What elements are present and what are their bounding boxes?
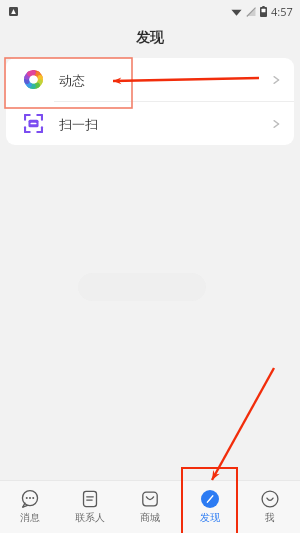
button[interactable]: 消息 bbox=[0, 481, 60, 533]
staticText: 发现 bbox=[200, 511, 220, 524]
staticText: 商城 bbox=[140, 511, 160, 524]
staticText: 动态 bbox=[59, 72, 85, 88]
staticText: 我 bbox=[265, 511, 275, 524]
staticText: 4:57 bbox=[271, 4, 293, 19]
button[interactable]: 动态 bbox=[6, 58, 294, 101]
staticText: 扫一扫 bbox=[59, 116, 98, 132]
staticText: 消息 bbox=[20, 511, 40, 524]
button[interactable]: 联系人 bbox=[60, 481, 120, 533]
button[interactable]: 发现 bbox=[180, 481, 240, 533]
staticText: 发现 bbox=[136, 29, 164, 47]
staticText: 联系人 bbox=[75, 511, 105, 524]
button[interactable]: 我 bbox=[240, 481, 300, 533]
button[interactable]: 商城 bbox=[120, 481, 180, 533]
button[interactable]: 扫一扫 bbox=[6, 102, 294, 145]
